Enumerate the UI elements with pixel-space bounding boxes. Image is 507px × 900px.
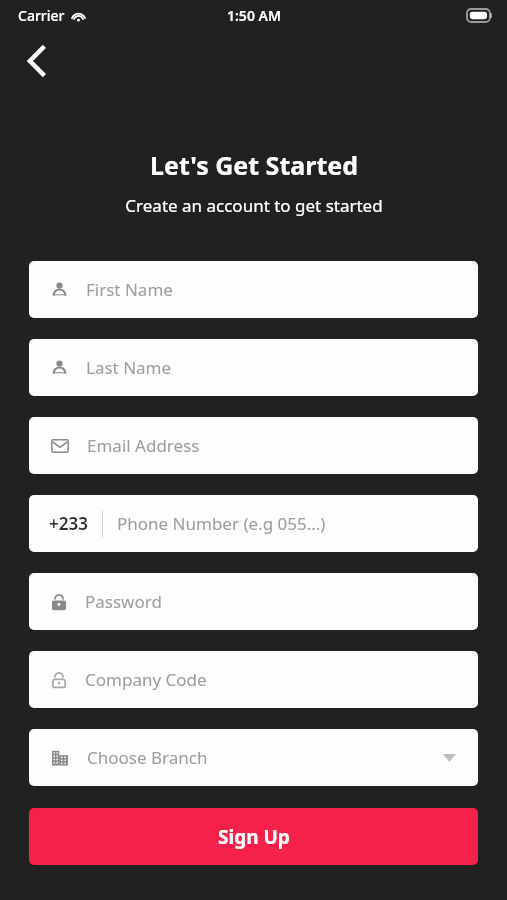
button[interactable]: +233	[29, 495, 478, 552]
button[interactable]: Choose Branch	[29, 729, 478, 786]
staticText: Phone Number (e.g 055...)	[117, 512, 326, 535]
staticText: Carrier	[18, 6, 65, 25]
staticText: Last Name	[86, 356, 172, 379]
staticText: Company Code	[85, 668, 207, 691]
staticText: +233	[49, 512, 88, 535]
button[interactable]: Email Address	[29, 417, 478, 474]
staticText: 1:50 AM	[227, 6, 281, 25]
staticText: First Name	[86, 278, 173, 301]
staticText: Create an account to get started	[125, 194, 383, 217]
button[interactable]: Last Name	[29, 339, 478, 396]
staticText: Sign Up	[218, 824, 290, 850]
staticText: Email Address	[87, 434, 200, 457]
button[interactable]: Password	[29, 573, 478, 630]
button[interactable]: First Name	[29, 261, 478, 318]
button[interactable]: Sign Up	[29, 808, 478, 865]
button[interactable]: Company Code	[29, 651, 478, 708]
button[interactable]: Back	[14, 39, 58, 83]
staticText: Let's Get Started	[150, 148, 358, 182]
staticText: Password	[85, 590, 162, 613]
staticText: Choose Branch	[87, 746, 208, 769]
